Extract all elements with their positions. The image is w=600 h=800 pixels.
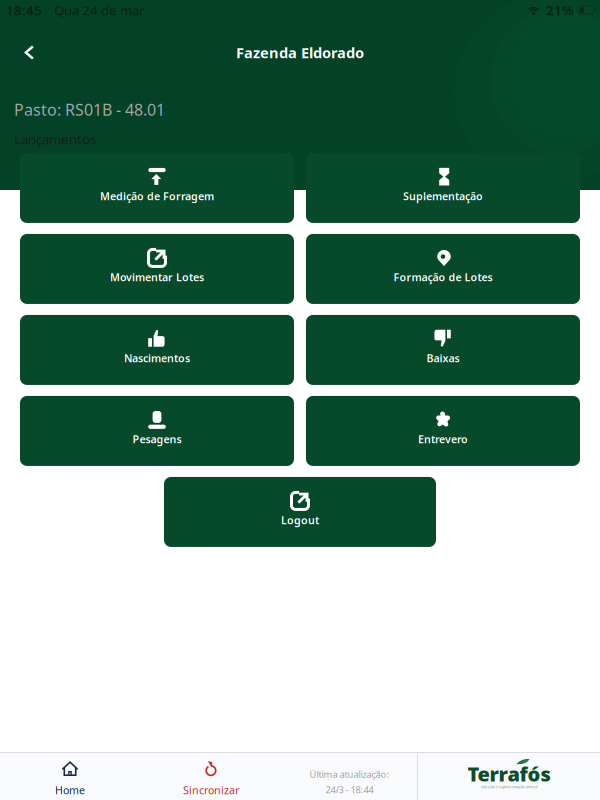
button[interactable]: Baixas: [306, 315, 580, 385]
staticText: nutrição e suplementação animal: [480, 784, 537, 789]
button[interactable]: Nascimentos: [20, 315, 294, 385]
button[interactable]: Movimentar Lotes: [20, 234, 294, 304]
button[interactable]: Back: [7, 30, 51, 74]
staticText: 24/3 - 18:44: [325, 783, 373, 796]
staticText: Lançamentos: [14, 130, 96, 148]
staticText: Nascimentos: [124, 351, 190, 365]
staticText: Pesagens: [132, 432, 181, 446]
staticText: 18:45: [6, 1, 42, 19]
staticText: Última atualização:: [309, 768, 389, 780]
button[interactable]: Sincronizar: [140, 753, 282, 800]
staticText: Sincronizar: [183, 783, 239, 797]
staticText: 21%: [546, 1, 574, 19]
button[interactable]: Pesagens: [20, 396, 294, 466]
staticText: Baixas: [426, 351, 459, 365]
button[interactable]: Logout: [164, 477, 436, 547]
button[interactable]: Formação de Lotes: [306, 234, 580, 304]
staticText: Logout: [281, 513, 319, 527]
staticText: Pasto: RS01B - 48.01: [14, 99, 165, 120]
staticText: Entrevero: [418, 432, 468, 446]
staticText: Medição de Forragem: [100, 189, 214, 203]
button[interactable]: Suplementação: [306, 153, 580, 223]
staticText: Formação de Lotes: [393, 270, 492, 284]
button[interactable]: Medição de Forragem: [20, 153, 294, 223]
button[interactable]: Entrevero: [306, 396, 580, 466]
staticText: Fazenda Eldorado: [236, 43, 364, 62]
button[interactable]: Home: [0, 753, 140, 800]
staticText: Terrafós: [467, 761, 550, 787]
staticText: Home: [55, 783, 85, 797]
staticText: Qua 24 de mar: [54, 1, 145, 19]
staticText: Movimentar Lotes: [110, 270, 204, 284]
staticText: Suplementação: [403, 189, 483, 203]
